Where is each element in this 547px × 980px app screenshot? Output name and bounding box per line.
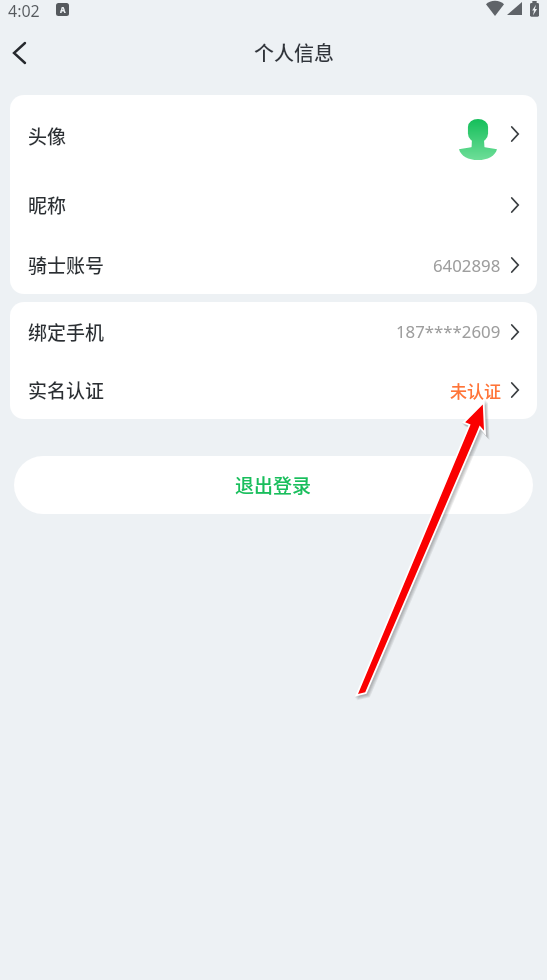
staticText: 未认证 <box>450 378 501 403</box>
staticText: 骑士账号 <box>28 251 105 279</box>
button[interactable]: 绑定手机 <box>10 302 537 361</box>
button[interactable]: 骑士账号 <box>10 236 537 294</box>
staticText: 退出登录 <box>235 471 312 499</box>
staticText: 个人信息 <box>254 38 334 67</box>
staticText: 绑定手机 <box>28 318 105 346</box>
button[interactable]: 昵称 <box>10 173 537 236</box>
button[interactable]: 实名认证 <box>10 361 537 419</box>
staticText: 4:02 <box>8 0 40 22</box>
staticText: 头像 <box>28 122 67 150</box>
staticText: A <box>60 4 66 15</box>
staticText: 昵称 <box>28 191 67 219</box>
staticText: 187****2609 <box>396 320 501 343</box>
button[interactable]: 退出登录 <box>14 456 533 514</box>
button[interactable]: Back <box>0 30 40 78</box>
staticText: 实名认证 <box>28 376 105 404</box>
staticText: 6402898 <box>433 254 501 277</box>
button[interactable]: 头像 <box>10 95 537 173</box>
